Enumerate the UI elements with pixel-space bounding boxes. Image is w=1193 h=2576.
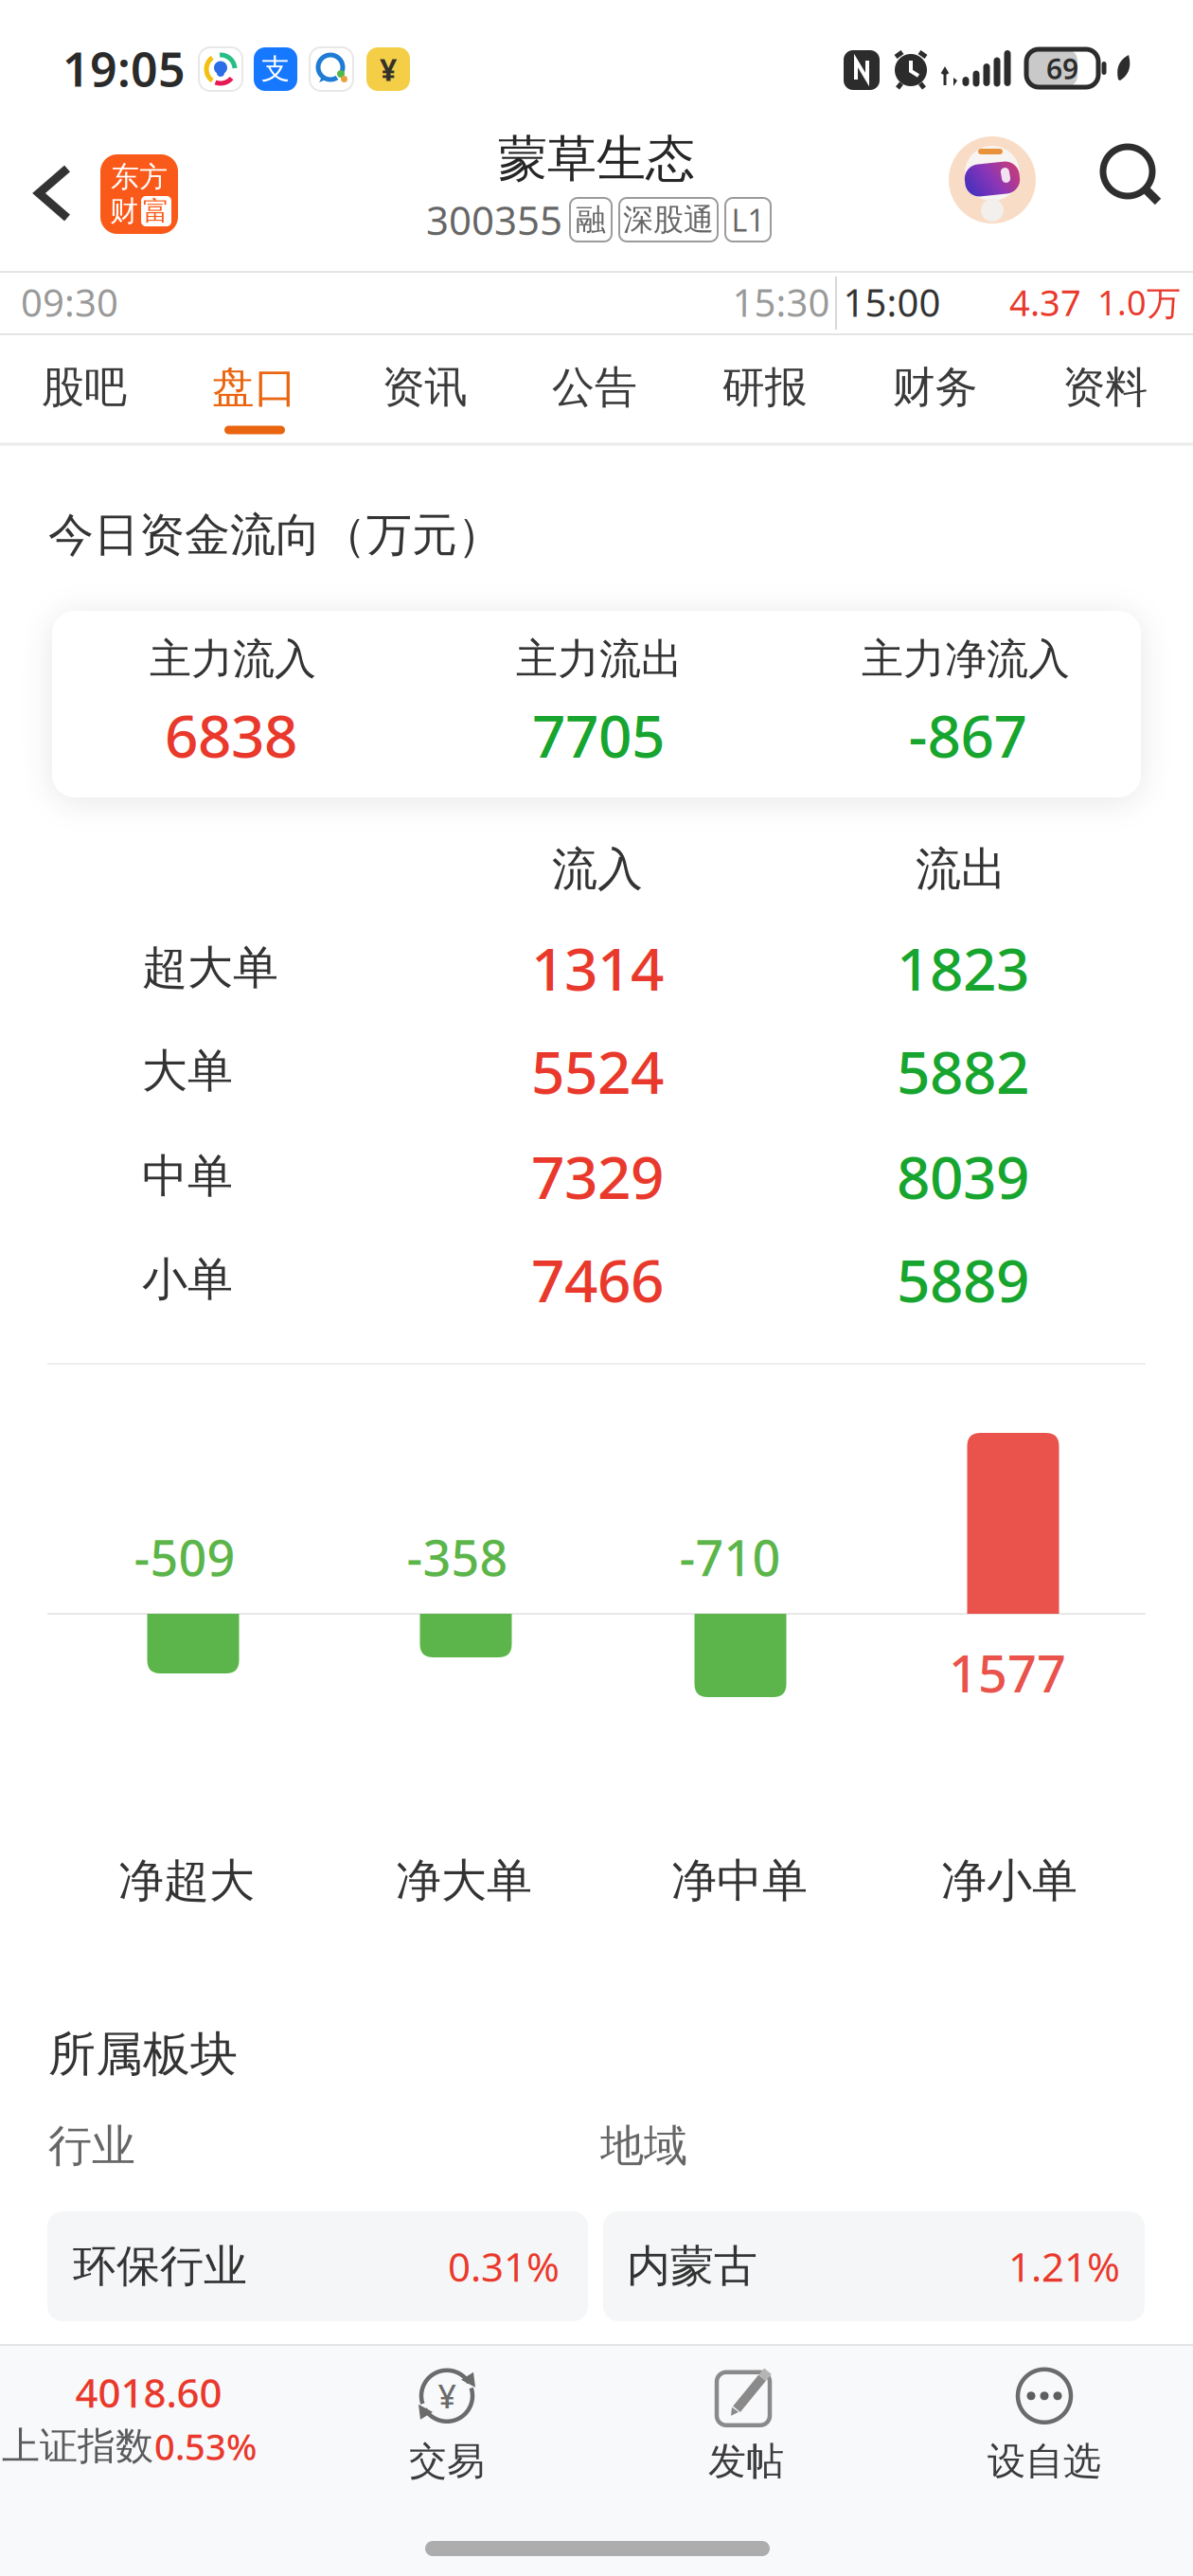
staticText: 5889	[897, 1240, 1029, 1319]
staticText: 主力净流入	[862, 633, 1070, 685]
staticText: L1	[731, 199, 765, 240]
staticText: 5524	[531, 1031, 664, 1111]
staticText: -509	[134, 1523, 235, 1590]
button[interactable]: 财务	[855, 333, 1015, 441]
staticText: 19:05	[62, 36, 186, 100]
staticText: 财务	[892, 361, 978, 414]
staticText: 盘口	[212, 361, 297, 414]
staticText: 8039	[897, 1136, 1029, 1216]
staticText: 15:30	[732, 276, 830, 328]
staticText: 研报	[722, 361, 807, 414]
button[interactable]: 盘口	[174, 333, 335, 441]
staticText: 资讯	[382, 361, 467, 414]
staticText: 主力流入	[150, 633, 316, 685]
staticText: 公告	[552, 361, 637, 414]
staticText: -358	[407, 1523, 508, 1590]
staticText: 1314	[531, 928, 664, 1008]
staticText: 0.53%	[154, 2422, 257, 2471]
button[interactable]: 资讯	[344, 333, 505, 441]
staticText: 资料	[1063, 361, 1148, 414]
staticText: 大单	[142, 1043, 233, 1100]
staticText: -710	[679, 1523, 781, 1590]
staticText: 支	[261, 51, 290, 87]
button[interactable]: 4018.60	[0, 2345, 284, 2496]
staticText: 股吧	[42, 361, 127, 414]
staticText: 1.21%	[1008, 2239, 1120, 2293]
staticText: 净超大	[118, 1852, 255, 1910]
staticText: 7466	[531, 1240, 664, 1319]
button[interactable]: 内蒙古	[603, 2211, 1145, 2321]
staticText: ¥	[380, 48, 397, 90]
staticText: 财	[110, 193, 138, 229]
button[interactable]: Back	[33, 163, 75, 224]
staticText: 超大单	[142, 939, 278, 997]
button[interactable]: ¥	[343, 2353, 551, 2495]
staticText: 0.31%	[448, 2239, 560, 2293]
staticText: ¥	[438, 2374, 456, 2418]
staticText: 7705	[532, 695, 665, 775]
staticText: 小单	[142, 1251, 233, 1308]
staticText: 净中单	[671, 1852, 808, 1910]
button[interactable]: 公告	[514, 333, 675, 441]
staticText: 蒙草生态	[498, 128, 695, 190]
staticText: 内蒙古	[627, 2239, 757, 2294]
staticText: 所属板块	[48, 2024, 238, 2084]
staticText: 富	[143, 195, 169, 228]
button[interactable]: Search	[1099, 145, 1166, 211]
staticText: 5882	[897, 1031, 1029, 1111]
staticText: 设自选	[988, 2438, 1101, 2485]
staticText: 净小单	[941, 1852, 1077, 1910]
staticText: 流出	[916, 841, 1006, 898]
staticText: 环保行业	[73, 2239, 247, 2294]
staticText: 发帖	[708, 2438, 784, 2485]
staticText: 1.0万	[1097, 279, 1181, 325]
staticText: 15:00	[843, 276, 941, 328]
staticText: 深股通	[623, 201, 714, 239]
button[interactable]: Assistant	[949, 136, 1036, 224]
button[interactable]: 环保行业	[47, 2211, 588, 2321]
button[interactable]: 研报	[684, 333, 845, 441]
staticText: 69	[1046, 49, 1078, 88]
staticText: -867	[908, 695, 1027, 775]
staticText: 流入	[552, 841, 643, 898]
button[interactable]: 资料	[1025, 333, 1186, 441]
staticText: 300355	[426, 193, 562, 247]
staticText: 6838	[165, 695, 297, 775]
staticText: 09:30	[21, 276, 118, 328]
staticText: 1577	[949, 1638, 1066, 1707]
staticText: 1823	[897, 928, 1029, 1008]
staticText: 融	[576, 201, 606, 239]
staticText: 中单	[142, 1148, 233, 1205]
staticText: 东方	[111, 159, 168, 195]
staticText: 行业	[48, 2119, 135, 2173]
staticText: 主力流出	[516, 633, 683, 685]
staticText: 7329	[531, 1136, 664, 1216]
staticText: 4.37	[1009, 278, 1081, 327]
staticText: 地域	[600, 2119, 687, 2173]
staticText: 今日资金流向（万元）	[48, 506, 503, 564]
button[interactable]: 发帖	[642, 2353, 850, 2495]
staticText: 上证指数	[2, 2422, 153, 2470]
button[interactable]: 东方财富	[100, 154, 178, 234]
button[interactable]: 股吧	[4, 333, 165, 441]
staticText: 4018.60	[75, 2365, 222, 2419]
staticText: 净大单	[396, 1852, 532, 1910]
button[interactable]: 设自选	[931, 2353, 1158, 2495]
staticText: 交易	[409, 2438, 485, 2485]
